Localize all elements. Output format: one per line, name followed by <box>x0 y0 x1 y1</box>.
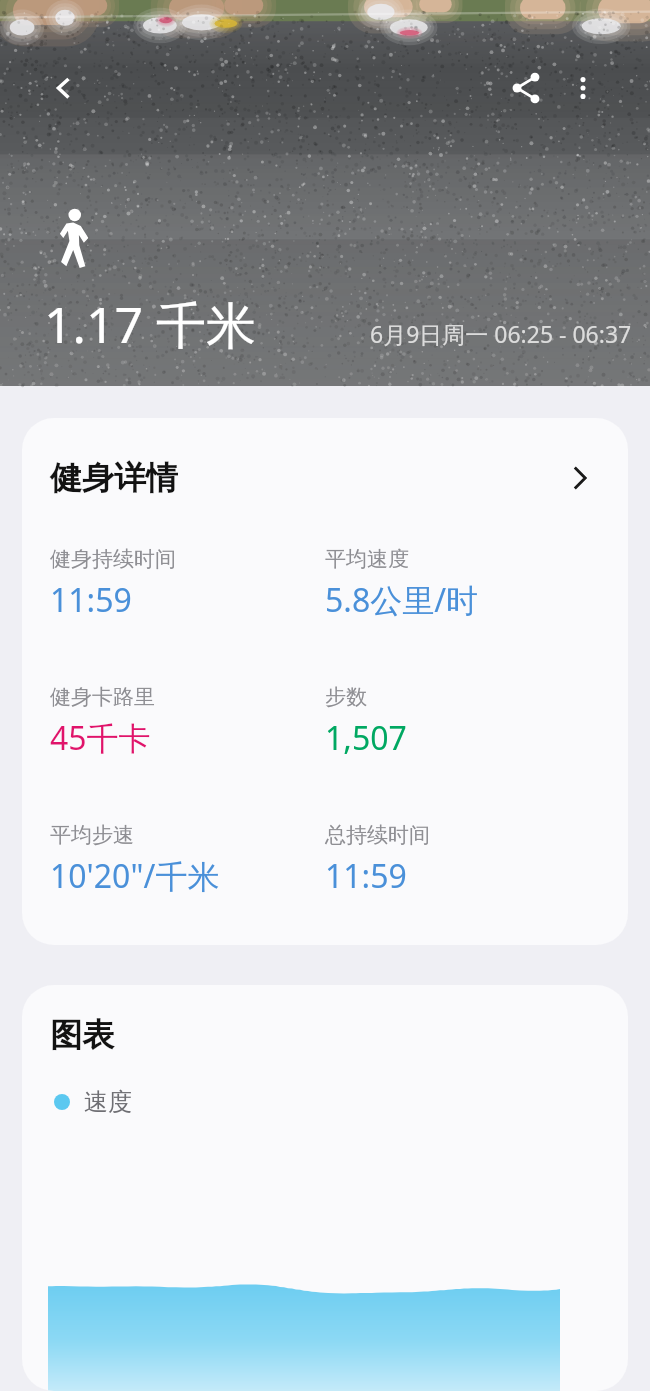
staticText: 11:59 <box>50 578 132 622</box>
staticText: 5.8公里/时 <box>325 578 479 622</box>
staticText: 速度 <box>84 1087 132 1117</box>
staticText: 步数 <box>325 684 367 710</box>
staticText: 图表 <box>50 1015 114 1055</box>
staticText: 平均速度 <box>325 546 409 572</box>
other: Open fitness details <box>556 454 604 502</box>
staticText: 健身持续时间 <box>50 546 176 572</box>
staticText: 6月9日周一 06:25 - 06:37 <box>370 318 632 349</box>
button[interactable]: 健身详情 <box>22 418 628 538</box>
staticText: 1.17 千米 <box>44 290 257 358</box>
button[interactable]: Share <box>496 58 556 118</box>
staticText: 10'20"/千米 <box>50 854 220 898</box>
staticText: 总持续时间 <box>325 822 430 848</box>
button[interactable]: Back <box>34 58 94 118</box>
staticText: 平均步速 <box>50 822 134 848</box>
button[interactable]: More options <box>553 58 613 118</box>
staticText: 45千卡 <box>50 716 151 760</box>
staticText: 1,507 <box>325 716 407 760</box>
staticText: 健身详情 <box>50 458 178 498</box>
staticText: 健身卡路里 <box>50 684 155 710</box>
staticText: 11:59 <box>325 854 407 898</box>
